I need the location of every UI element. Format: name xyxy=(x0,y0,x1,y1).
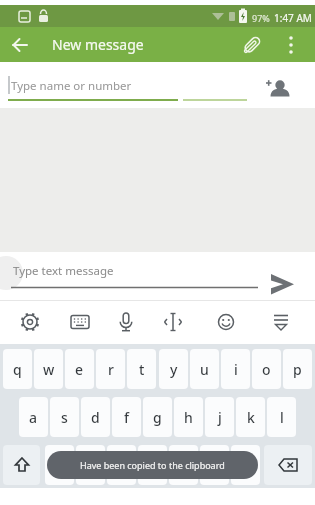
button[interactable]: b xyxy=(169,445,198,485)
staticText: c xyxy=(118,456,125,475)
staticText: q xyxy=(13,360,22,379)
staticText: 97% xyxy=(252,12,270,24)
staticText: v xyxy=(149,456,157,475)
button[interactable] xyxy=(262,300,315,344)
button[interactable]: d xyxy=(81,397,110,437)
button[interactable] xyxy=(235,27,269,62)
button[interactable]: i xyxy=(221,349,250,389)
button[interactable] xyxy=(262,266,302,300)
button[interactable] xyxy=(0,300,52,344)
staticText: b xyxy=(179,456,188,475)
button[interactable]: x xyxy=(76,445,105,485)
button[interactable]: a xyxy=(19,397,48,437)
staticText: l xyxy=(280,408,284,427)
button[interactable] xyxy=(3,445,40,485)
button[interactable] xyxy=(209,300,262,344)
staticText: h xyxy=(184,408,193,427)
staticText: Type text message xyxy=(13,263,114,279)
button[interactable]: o xyxy=(252,349,281,389)
button[interactable]: s xyxy=(50,397,79,437)
staticText: j xyxy=(218,408,222,427)
button[interactable]: k xyxy=(236,397,265,437)
button[interactable]: e xyxy=(65,349,94,389)
button[interactable]: g xyxy=(143,397,172,437)
staticText: k xyxy=(247,408,255,427)
button[interactable]: h xyxy=(174,397,203,437)
staticText: w xyxy=(43,360,55,379)
staticText: New message xyxy=(52,35,144,54)
button[interactable]: q xyxy=(3,349,32,389)
button[interactable] xyxy=(0,27,40,62)
staticText: Have been copied to the clipboard xyxy=(80,459,225,471)
button[interactable]: t xyxy=(127,349,156,389)
button[interactable] xyxy=(281,27,301,62)
staticText: y xyxy=(170,360,178,379)
staticText: i xyxy=(234,360,238,379)
button[interactable]: z xyxy=(45,445,74,485)
staticText: s xyxy=(61,408,68,427)
button[interactable]: j xyxy=(205,397,234,437)
button[interactable] xyxy=(264,445,312,485)
staticText: a xyxy=(29,408,38,427)
staticText: 1:47 AM xyxy=(274,11,312,25)
staticText: n xyxy=(210,456,219,475)
button[interactable]: w xyxy=(34,349,63,389)
staticText: r xyxy=(108,360,114,379)
staticText: u xyxy=(200,360,209,379)
button[interactable]: y xyxy=(159,349,188,389)
button[interactable]: f xyxy=(112,397,141,437)
staticText: p xyxy=(293,360,302,379)
button[interactable]: l xyxy=(267,397,296,437)
staticText: d xyxy=(91,408,100,427)
staticText: e xyxy=(75,360,84,379)
staticText: Type name or number xyxy=(11,78,132,94)
button[interactable]: p xyxy=(283,349,312,389)
button[interactable] xyxy=(156,300,209,344)
button[interactable] xyxy=(258,68,294,100)
button[interactable]: r xyxy=(96,349,125,389)
staticText: f xyxy=(124,408,129,427)
staticText: t xyxy=(139,360,145,379)
staticText: g xyxy=(153,408,162,427)
button[interactable] xyxy=(52,300,104,344)
button[interactable] xyxy=(104,300,156,344)
button[interactable]: m xyxy=(231,445,260,485)
button[interactable]: c xyxy=(107,445,136,485)
button[interactable]: n xyxy=(200,445,229,485)
staticText: o xyxy=(262,360,271,379)
staticText: x xyxy=(87,456,95,475)
button[interactable]: v xyxy=(138,445,167,485)
button[interactable]: u xyxy=(190,349,219,389)
